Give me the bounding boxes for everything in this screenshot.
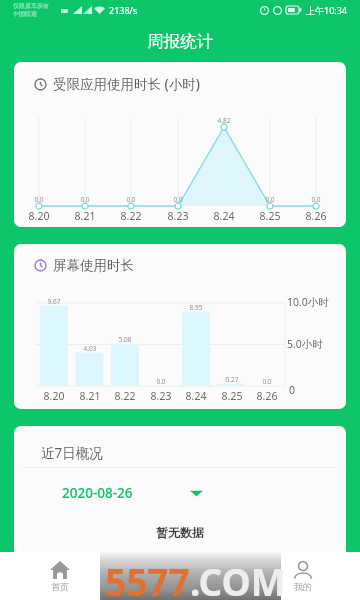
- staticText: 0.0: [249, 377, 285, 386]
- staticText: 5.0小时: [287, 337, 323, 351]
- staticText: 8.23: [143, 389, 179, 403]
- staticText: 8.21: [71, 209, 99, 223]
- staticText: 8.22: [117, 209, 145, 223]
- staticText: 8.25: [214, 389, 250, 403]
- staticText: .COM: [190, 556, 286, 600]
- staticText: 9.67: [36, 297, 72, 306]
- staticText: 5.08: [107, 335, 143, 344]
- staticText: 受限应用使用时长 (小时): [53, 75, 200, 93]
- staticText: 8.24: [210, 209, 238, 223]
- staticText: 上午10:34: [306, 4, 348, 16]
- staticText: 0.0: [27, 195, 51, 204]
- staticText: 8.21: [72, 389, 108, 403]
- staticText: 中国联通: [13, 10, 37, 18]
- button[interactable]: 2020-08-26: [48, 478, 238, 508]
- staticText: 8.22: [107, 389, 143, 403]
- button[interactable]: 首页: [35, 552, 85, 600]
- staticText: 10.0小时: [287, 295, 329, 309]
- staticText: 8.95: [178, 303, 214, 312]
- staticText: 4.03: [72, 344, 108, 353]
- staticText: 近7日概况: [41, 444, 103, 462]
- button[interactable]: 我的: [278, 552, 328, 600]
- staticText: 8.25: [256, 209, 284, 223]
- staticText: 0.0: [119, 195, 143, 204]
- staticText: 周报统计: [147, 31, 213, 52]
- staticText: 8.26: [302, 209, 330, 223]
- staticText: 0.0: [304, 195, 328, 204]
- staticText: 首页: [51, 581, 69, 592]
- staticText: 0.27: [214, 375, 250, 384]
- staticText: 2020-08-26: [62, 484, 133, 502]
- staticText: 5577: [105, 556, 190, 600]
- staticText: 0.0: [143, 377, 179, 386]
- staticText: 8.24: [178, 389, 214, 403]
- staticText: 0.0: [73, 195, 97, 204]
- staticText: 0.0: [258, 195, 282, 204]
- staticText: 0.0: [166, 195, 190, 204]
- staticText: 我的: [294, 581, 312, 592]
- staticText: 屏幕使用时长: [53, 257, 134, 274]
- staticText: 8.26: [249, 389, 285, 403]
- staticText: 8.23: [164, 209, 192, 223]
- staticText: 4.82: [212, 116, 236, 125]
- staticText: 8.20: [36, 389, 72, 403]
- staticText: 8.20: [25, 209, 53, 223]
- staticText: 暂无数据: [14, 525, 346, 540]
- staticText: 0: [289, 383, 296, 397]
- staticText: 2138/s: [109, 4, 138, 16]
- staticText: 仅限原车所有: [13, 2, 49, 10]
